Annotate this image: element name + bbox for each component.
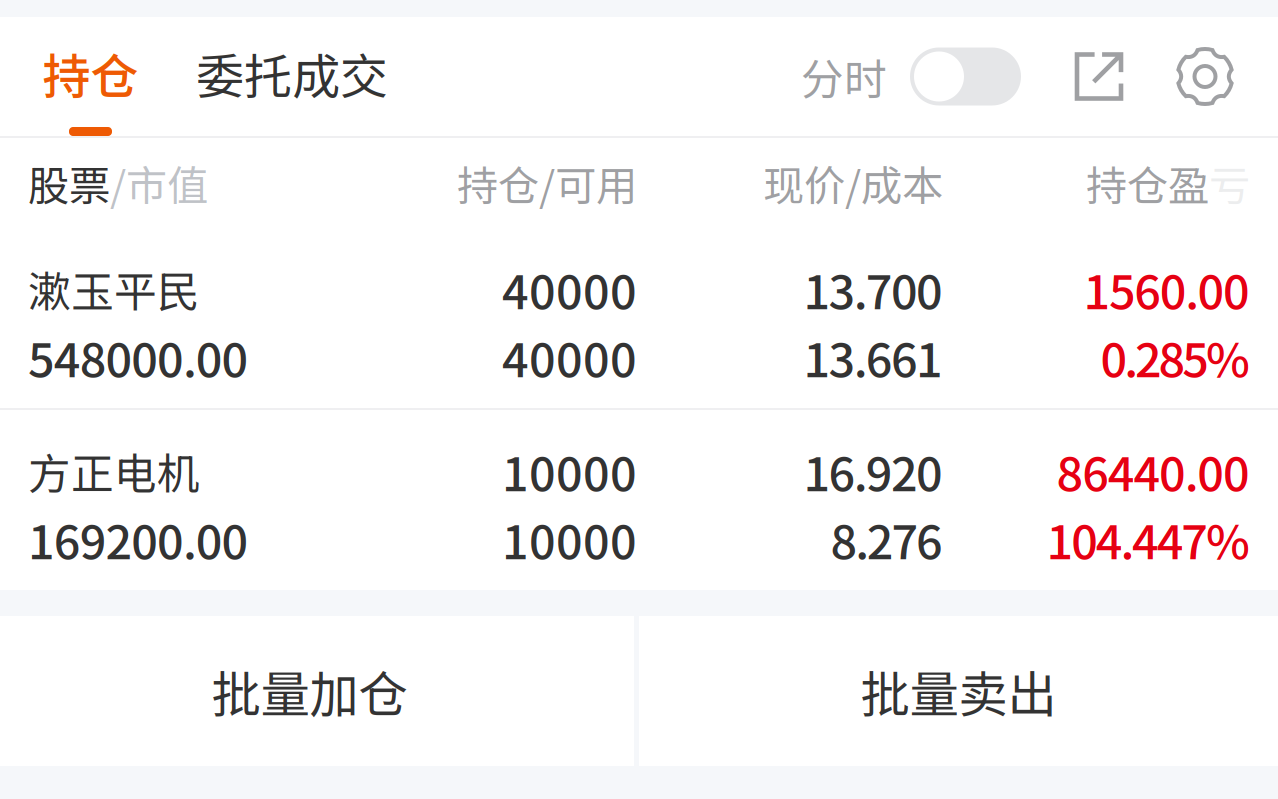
- staticText: 批量加仓: [211, 655, 407, 727]
- button[interactable]: 批量卖出: [639, 616, 1278, 766]
- staticText: 分时: [801, 46, 887, 107]
- staticText: 10000: [502, 437, 637, 505]
- button[interactable]: 设置: [1124, 31, 1234, 121]
- staticText: 0.285%: [1100, 323, 1250, 391]
- staticText: 10000: [502, 505, 637, 573]
- staticText: 委托成交: [196, 38, 388, 108]
- staticText: 持仓/可用: [457, 153, 637, 213]
- staticText: 方正电机: [28, 440, 200, 502]
- staticText: 169200.00: [28, 505, 248, 573]
- staticText: 漱玉平民: [28, 258, 200, 320]
- staticText: 40000: [502, 323, 637, 391]
- staticText: 持仓盈: [1086, 153, 1209, 213]
- button[interactable]: 委托成交: [138, 17, 386, 136]
- staticText: 548000.00: [28, 323, 248, 391]
- button[interactable]: 分时开关: [801, 31, 1021, 121]
- staticText: /市值: [110, 153, 208, 213]
- staticText: 16.920: [803, 437, 943, 505]
- staticText: 13.661: [803, 323, 943, 391]
- staticText: 现价/成本: [763, 153, 943, 213]
- staticText: 1560.00: [1083, 255, 1250, 323]
- staticText: 批量卖出: [860, 655, 1056, 727]
- staticText: 13.700: [803, 255, 943, 323]
- staticText: 40000: [502, 255, 637, 323]
- staticText: 86440.00: [1056, 437, 1250, 505]
- staticText: 股票: [28, 153, 110, 213]
- staticText: 104.447%: [1046, 505, 1250, 573]
- button[interactable]: 分享: [1021, 31, 1124, 121]
- staticText: 亏: [1209, 153, 1250, 213]
- button[interactable]: 批量加仓: [0, 616, 634, 766]
- button[interactable]: 持仓: [0, 17, 138, 136]
- staticText: 8.276: [830, 505, 943, 573]
- staticText: 持仓: [42, 38, 138, 108]
